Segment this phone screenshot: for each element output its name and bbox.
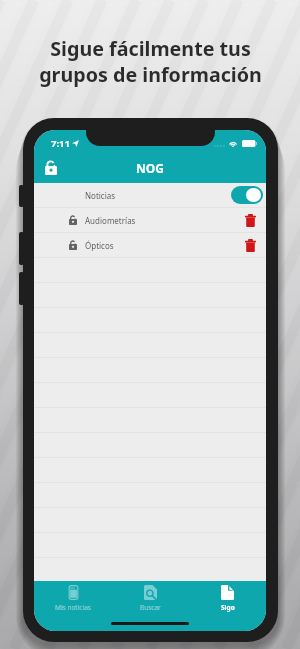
button[interactable]: Activar Noticias	[231, 186, 263, 204]
button[interactable]: Unlock	[40, 156, 62, 180]
staticText: Noticias	[85, 190, 116, 201]
button[interactable]: Sigo	[189, 583, 266, 614]
button[interactable]: Mis noticias	[34, 583, 112, 614]
staticText: Audiometrías	[85, 215, 136, 226]
button[interactable]: Audiometrías	[34, 208, 266, 233]
staticText: Buscar	[140, 603, 161, 612]
staticText: Sigo	[221, 603, 235, 612]
button[interactable]: Noticias	[34, 183, 266, 208]
button[interactable]: Eliminar	[242, 235, 259, 255]
staticText: Mis noticias	[55, 603, 91, 612]
staticText: Sigue fácilmente tus grupos de informaci…	[39, 35, 262, 88]
button[interactable]: Ópticos	[34, 233, 266, 258]
staticText: NOG	[136, 160, 164, 176]
button[interactable]: Eliminar	[242, 210, 259, 230]
staticText: 7:11	[51, 137, 70, 150]
button[interactable]: Buscar	[112, 583, 189, 614]
staticText: Ópticos	[85, 240, 114, 251]
